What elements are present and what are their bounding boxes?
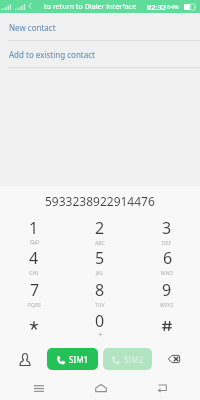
staticText: 0 [95,310,105,332]
button[interactable]: 7 [3,279,65,309]
staticText: 3 [162,217,172,239]
staticText: 02:32 [147,2,167,12]
button[interactable] [3,310,65,340]
staticText: DEF [162,240,172,247]
button[interactable]: 4 [3,247,65,277]
button[interactable]: 5 [69,247,131,277]
button[interactable]: 3 [136,217,198,247]
staticText: 64% [167,3,179,11]
staticText: TUV [95,302,105,309]
staticText: 5 [95,247,105,269]
staticText: to return to Dialer interface [44,2,137,12]
button[interactable]: Add contact [14,348,36,370]
staticText: 9 [162,279,172,301]
staticText: SIM1 [69,354,89,365]
button[interactable]: 0 [69,310,131,340]
staticText: 6 [163,247,173,269]
button[interactable]: Recent apps [17,376,61,400]
button[interactable]: Backspace [163,348,185,370]
staticText: 8 [95,279,105,301]
button[interactable]: 6 [136,247,198,277]
staticText: New contact [9,22,56,33]
button[interactable]: New contact [0,17,200,38]
staticText: 7 [30,279,40,301]
staticText: 5933238922914476 [45,193,155,209]
button[interactable]: 8 [69,279,131,309]
button[interactable]: SIM2 [103,348,152,370]
button[interactable]: Back [139,376,183,400]
staticText: MNO [161,270,174,277]
button[interactable]: 9 [136,279,198,309]
button[interactable]: 1 [3,217,65,247]
staticText: 2 [95,217,105,239]
staticText: PQRS [28,302,41,309]
staticText: SIM2 [124,354,144,365]
button[interactable]: 2 [69,217,131,247]
staticText: 4 [29,247,39,269]
button[interactable]: Home [79,376,123,400]
staticText: ABC [95,240,105,247]
button[interactable] [136,310,198,340]
button[interactable]: Add to existing contact [0,44,200,65]
staticText: JKL [96,270,104,277]
staticText: WXYZ [160,302,174,309]
staticText: GHI [29,270,39,277]
staticText: 1 [29,217,39,239]
staticText: Add to existing contact [9,49,95,60]
button[interactable]: SIM1 [47,348,98,370]
